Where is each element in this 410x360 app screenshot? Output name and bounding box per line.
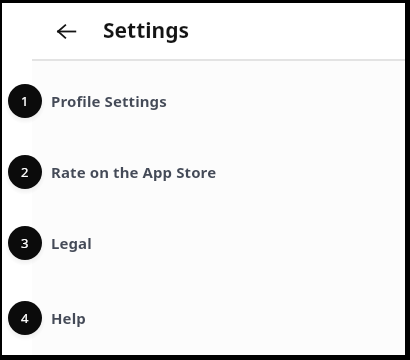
button[interactable]: 4 — [2, 299, 405, 337]
button[interactable]: 3 — [2, 224, 405, 262]
button[interactable]: 2 — [2, 153, 405, 191]
staticText: Profile Settings — [51, 91, 167, 111]
staticText: 1 — [21, 92, 29, 110]
staticText: Rate on the App Store — [51, 162, 217, 182]
staticText: Settings — [103, 16, 190, 45]
staticText: 3 — [21, 234, 29, 252]
button[interactable]: 1 — [2, 82, 405, 120]
staticText: Legal — [51, 233, 92, 253]
button[interactable]: Back — [50, 15, 82, 47]
staticText: Help — [51, 308, 86, 328]
staticText: 2 — [21, 163, 29, 181]
staticText: 4 — [21, 309, 29, 327]
